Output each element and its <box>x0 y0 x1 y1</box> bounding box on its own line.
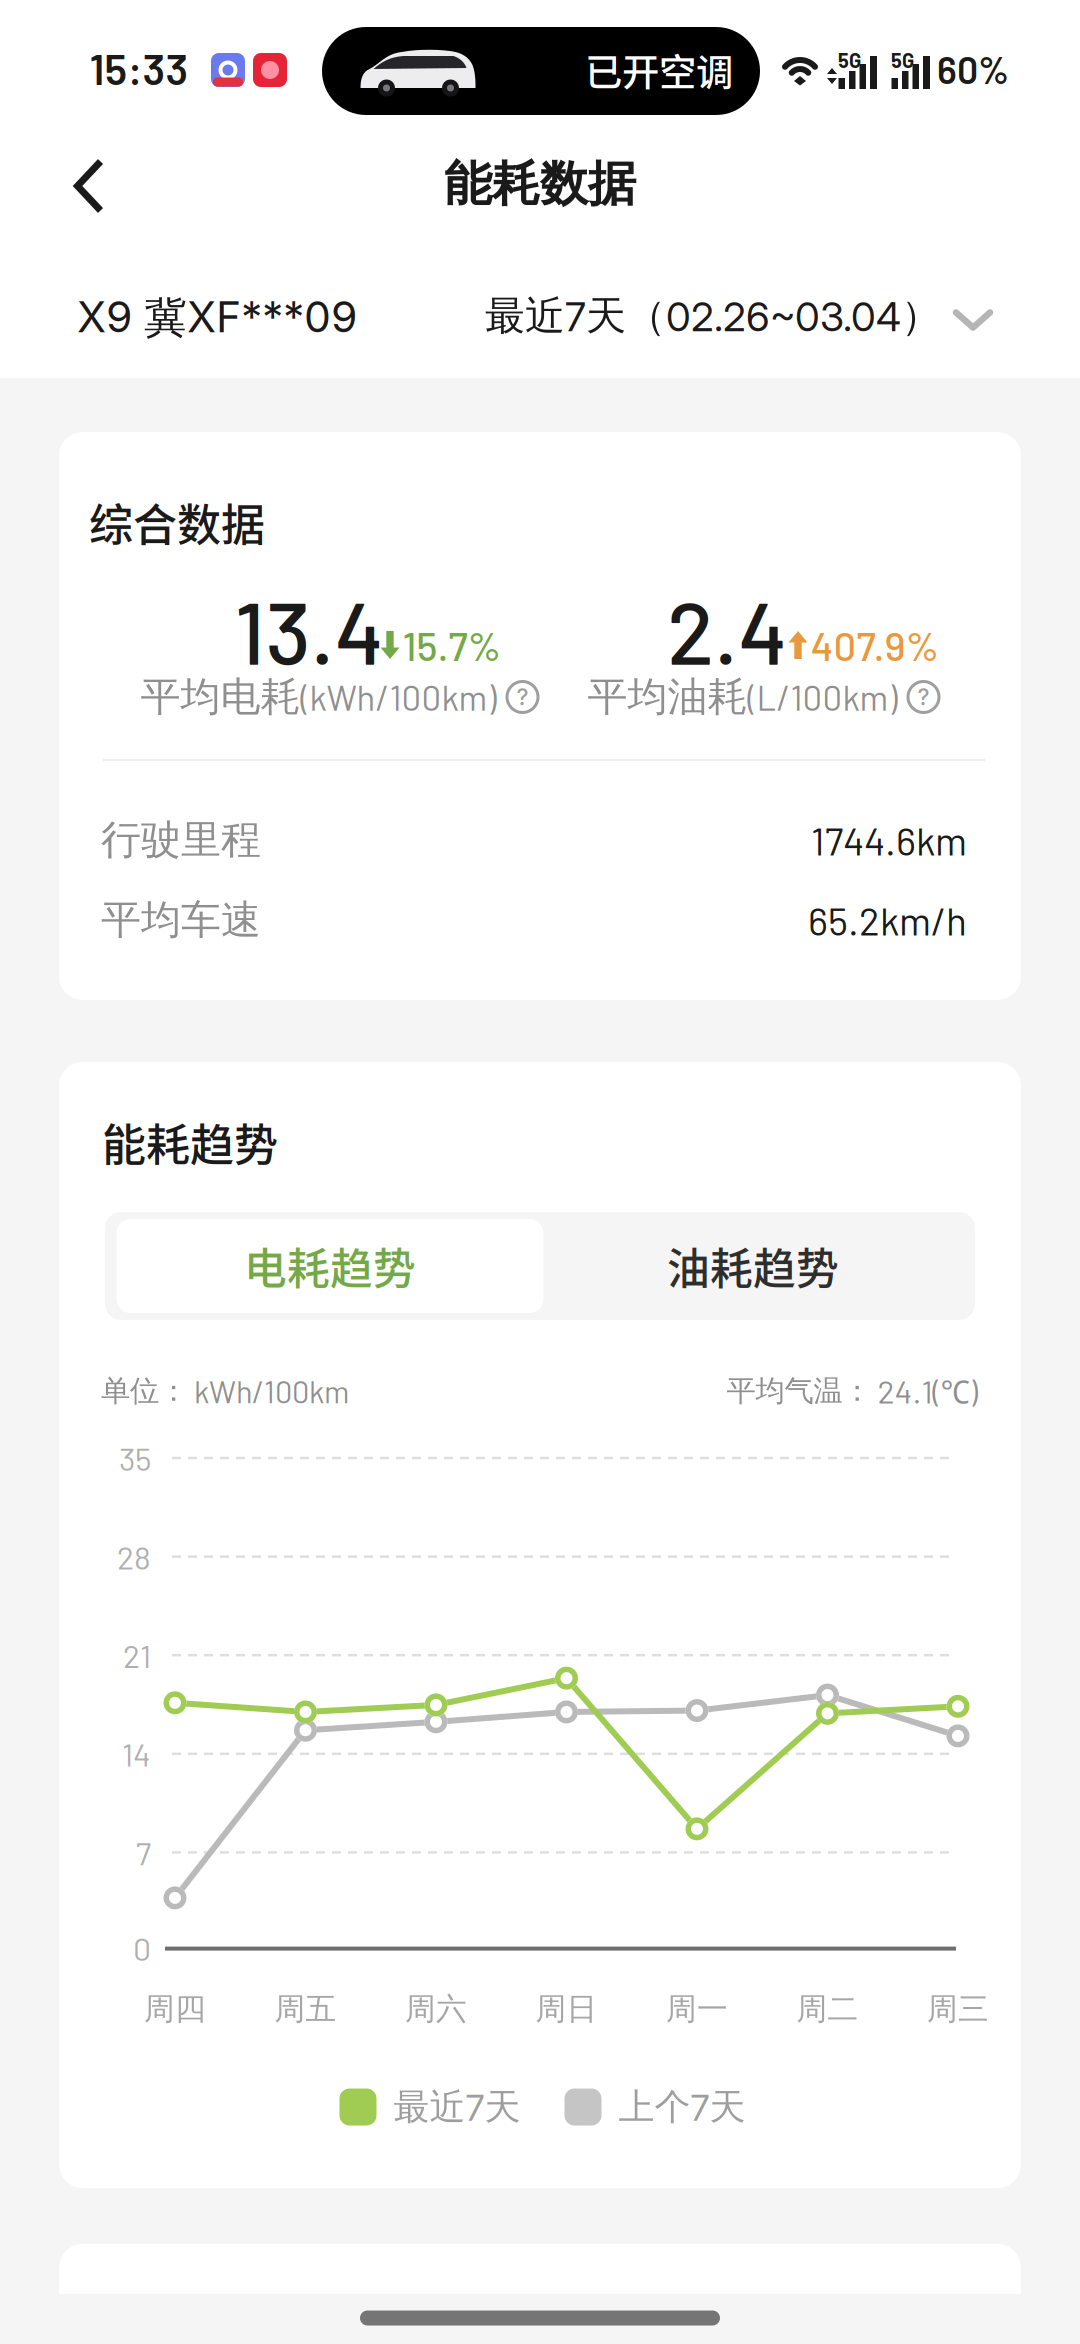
staticText: 65.2km/h <box>808 897 967 943</box>
staticText: 平均气温： <box>726 1372 871 1409</box>
staticText: ? <box>917 683 929 711</box>
staticText: (kWh/100km) <box>300 676 496 718</box>
staticText: 平均车速 <box>101 895 261 945</box>
staticText: 上个7天 <box>618 2084 745 2130</box>
staticText: 21 <box>123 1636 151 1674</box>
staticText: 能耗趋势 <box>102 1110 278 1174</box>
staticText: 周四 <box>144 1990 206 2028</box>
staticText: 1744.6km <box>811 817 967 863</box>
staticText: 13.4 <box>234 578 383 682</box>
staticText: X9 冀XF***09 <box>77 291 357 345</box>
button[interactable]: 选择车辆 <box>77 291 357 345</box>
button[interactable]: 返回 <box>44 142 134 230</box>
button[interactable]: 平均油耗说明 <box>897 680 940 714</box>
staticText: 周三 <box>927 1990 989 2028</box>
staticText: 周五 <box>274 1990 336 2028</box>
staticText: 7 <box>136 1833 151 1872</box>
staticText: 平均电耗 <box>140 672 300 722</box>
staticText: 周日 <box>535 1990 597 2028</box>
staticText: 行驶里程 <box>101 815 261 865</box>
button[interactable]: 油耗趋势 <box>539 1219 966 1313</box>
staticText: 28 <box>117 1537 151 1576</box>
staticText: 周二 <box>796 1990 858 2028</box>
button[interactable]: 电耗趋势 <box>116 1219 543 1313</box>
staticText: 电耗趋势 <box>244 1235 416 1297</box>
staticText: 15:33 <box>89 42 188 94</box>
staticText: kWh/100km <box>194 1373 349 1409</box>
staticText: 407.9% <box>810 621 939 669</box>
staticText: 2.4 <box>667 578 787 682</box>
staticText: 平均油耗 <box>587 672 747 722</box>
staticText: 14 <box>122 1735 151 1773</box>
staticText: 60% <box>937 47 1009 91</box>
staticText: 最近7天（02.26~03.04） <box>485 291 941 341</box>
button[interactable]: 平均电耗说明 <box>496 680 539 714</box>
staticText: 综合数据 <box>89 490 265 554</box>
staticText: 0 <box>133 1929 151 1967</box>
staticText: ? <box>516 683 528 711</box>
staticText: 最近7天 <box>393 2084 520 2130</box>
staticText: 5G <box>891 48 914 72</box>
staticText: 5G <box>838 48 861 72</box>
staticText: 已开空调 <box>585 43 733 97</box>
staticText: (L/100km) <box>747 676 897 718</box>
staticText: 35 <box>119 1439 151 1477</box>
staticText: 24.1(℃) <box>877 1369 977 1413</box>
button[interactable]: 车辆状态：已开空调 <box>322 27 760 115</box>
staticText: 能耗数据 <box>444 154 636 214</box>
staticText: 周六 <box>405 1990 467 2028</box>
staticText: 15.7% <box>402 621 501 669</box>
button[interactable]: 选择日期范围 <box>489 288 993 348</box>
staticText: 单位： <box>101 1372 188 1409</box>
staticText: 油耗趋势 <box>667 1235 839 1297</box>
staticText: 周一 <box>666 1990 728 2028</box>
